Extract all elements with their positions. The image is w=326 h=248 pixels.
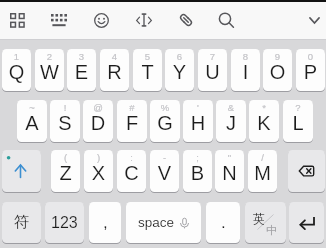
staticText: R	[100, 61, 129, 83]
staticText: '	[183, 102, 213, 113]
staticText: X	[84, 162, 113, 184]
button[interactable]: -	[150, 150, 179, 192]
button[interactable]: #	[117, 100, 147, 142]
staticText: 中	[266, 223, 277, 237]
staticText: !	[50, 102, 80, 113]
staticText: 英	[253, 211, 265, 226]
staticText: .	[221, 213, 226, 232]
button[interactable]: Enter	[289, 202, 324, 243]
button[interactable]: 0	[296, 49, 325, 91]
staticText: W	[35, 61, 64, 83]
staticText: /	[248, 152, 277, 163]
button[interactable]: Search	[210, 3, 242, 37]
staticText: O	[263, 61, 292, 83]
button[interactable]: @	[83, 100, 113, 142]
button[interactable]: 4	[100, 49, 129, 91]
button[interactable]: %	[150, 100, 180, 142]
button[interactable]: space	[126, 202, 201, 243]
staticText: @	[83, 102, 113, 113]
button[interactable]: ;	[183, 150, 212, 192]
button[interactable]: 8	[231, 49, 260, 91]
staticText: M	[248, 162, 277, 184]
button[interactable]: &	[216, 100, 246, 142]
button[interactable]: Panels	[1, 3, 33, 37]
staticText: 123	[51, 214, 78, 232]
button[interactable]: 3	[67, 49, 96, 91]
button[interactable]: 5	[133, 49, 162, 91]
staticText: "	[215, 152, 244, 163]
button[interactable]: 9	[263, 49, 292, 91]
button[interactable]: 1	[2, 49, 31, 91]
staticText: C	[117, 162, 146, 184]
staticText: 9	[263, 51, 292, 62]
staticText: V	[150, 162, 179, 184]
button[interactable]: ?	[283, 100, 313, 142]
button[interactable]: 符	[2, 202, 41, 243]
staticText: E	[67, 61, 96, 83]
button[interactable]: *	[249, 100, 279, 142]
staticText: 2	[35, 51, 64, 62]
staticText: S	[50, 112, 80, 134]
button[interactable]: Emoji	[85, 3, 117, 37]
staticText: ,	[103, 213, 108, 232]
staticText: 6	[165, 51, 194, 62]
button[interactable]: .	[206, 202, 240, 243]
button[interactable]: :	[117, 150, 146, 192]
staticText: *	[249, 102, 279, 113]
staticText: N	[215, 162, 244, 184]
staticText: T	[133, 61, 162, 83]
button[interactable]: '	[183, 100, 213, 142]
staticText: 符	[14, 213, 29, 232]
button[interactable]: /	[248, 150, 277, 192]
button[interactable]: Switch input language	[245, 202, 286, 243]
button[interactable]: Move cursor	[128, 3, 160, 37]
staticText: F	[117, 112, 147, 134]
button[interactable]: Keyboard layout	[43, 3, 75, 37]
button[interactable]: Clipboard	[170, 3, 202, 37]
button[interactable]: 6	[165, 49, 194, 91]
button[interactable]: )	[84, 150, 113, 192]
staticText: K	[249, 112, 279, 134]
staticText: I	[231, 61, 260, 83]
staticText: 1	[2, 51, 31, 62]
staticText: U	[198, 61, 227, 83]
staticText: 5	[133, 51, 162, 62]
button[interactable]: 7	[198, 49, 227, 91]
staticText: &	[216, 102, 246, 113]
staticText: 8	[231, 51, 260, 62]
staticText: 0	[296, 51, 325, 62]
staticText: L	[283, 112, 313, 134]
staticText: 4	[100, 51, 129, 62]
staticText: Q	[2, 61, 31, 83]
staticText: :	[117, 152, 146, 163]
button[interactable]: Shift	[2, 150, 41, 192]
button[interactable]: ,	[89, 202, 121, 243]
staticText: space	[138, 215, 175, 230]
staticText: -	[150, 152, 179, 163]
staticText: A	[17, 112, 47, 134]
staticText: %	[150, 102, 180, 113]
staticText: P	[296, 61, 325, 83]
staticText: H	[183, 112, 213, 134]
button[interactable]: Backspace	[288, 150, 325, 192]
button[interactable]: 2	[35, 49, 64, 91]
button[interactable]: "	[215, 150, 244, 192]
staticText: B	[183, 162, 212, 184]
staticText: 3	[67, 51, 96, 62]
button[interactable]: !	[50, 100, 80, 142]
button[interactable]: (	[51, 150, 80, 192]
staticText: Z	[51, 162, 80, 184]
staticText: ;	[183, 152, 212, 163]
staticText: ~	[17, 102, 47, 113]
button[interactable]: ~	[17, 100, 47, 142]
staticText: 7	[198, 51, 227, 62]
staticText: Y	[165, 61, 194, 83]
staticText: J	[216, 112, 246, 134]
button[interactable]: 123	[45, 202, 84, 243]
button[interactable]: Hide keyboard	[298, 3, 326, 37]
staticText: D	[83, 112, 113, 134]
staticText: ?	[283, 102, 313, 113]
staticText: G	[150, 112, 180, 134]
staticText: )	[84, 152, 113, 163]
staticText: #	[117, 102, 147, 113]
